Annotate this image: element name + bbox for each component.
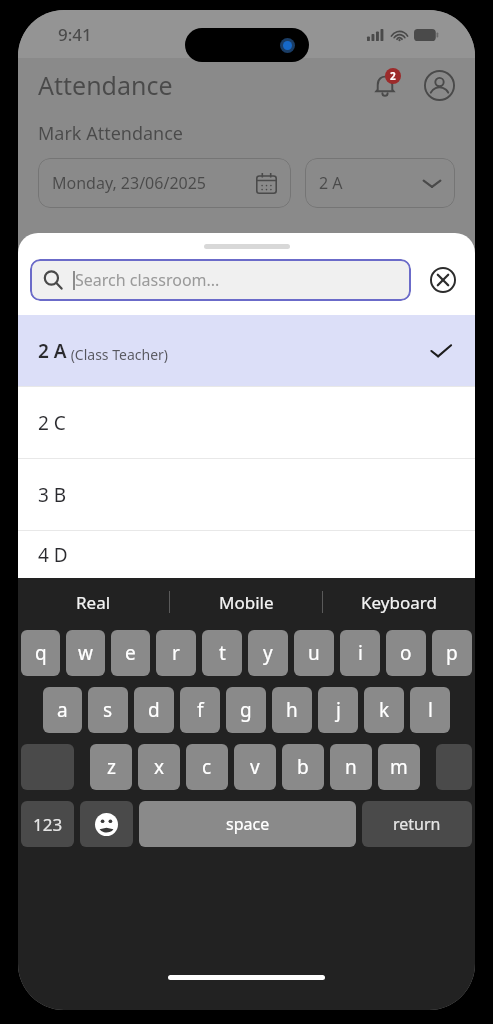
staticText: m bbox=[390, 754, 408, 780]
staticText: c bbox=[202, 754, 212, 780]
staticText: a bbox=[57, 697, 68, 723]
button[interactable]: m bbox=[378, 744, 420, 790]
button[interactable]: Notifications bbox=[365, 65, 405, 105]
button[interactable]: u bbox=[294, 630, 334, 676]
button[interactable]: 2 A bbox=[18, 315, 475, 386]
staticText: q bbox=[35, 640, 47, 666]
staticText: (Class Teacher) bbox=[67, 345, 169, 364]
button[interactable]: i bbox=[340, 630, 380, 676]
button[interactable]: e bbox=[111, 630, 150, 676]
staticText: y bbox=[263, 640, 273, 666]
staticText: n bbox=[345, 754, 357, 780]
button[interactable]: a bbox=[43, 687, 82, 733]
staticText: 4 D bbox=[38, 542, 68, 568]
staticText: u bbox=[308, 640, 320, 666]
staticText: 2 bbox=[390, 69, 396, 83]
staticText: e bbox=[125, 640, 136, 666]
button[interactable]: Real bbox=[18, 578, 169, 626]
staticText: i bbox=[358, 640, 363, 666]
staticText: Search classroom... bbox=[75, 269, 220, 291]
staticText: x bbox=[154, 754, 165, 780]
button[interactable]: s bbox=[88, 687, 128, 733]
staticText: Monday, 23/06/2025 bbox=[52, 172, 206, 194]
button[interactable]: t bbox=[202, 630, 242, 676]
staticText: k bbox=[379, 697, 390, 723]
staticText: Mark Attendance bbox=[38, 121, 184, 146]
staticText: 2 A bbox=[319, 172, 343, 194]
button[interactable]: q bbox=[21, 630, 60, 676]
button[interactable]: b bbox=[282, 744, 324, 790]
button[interactable]: n bbox=[330, 744, 372, 790]
staticText: z bbox=[107, 754, 116, 780]
staticText: space bbox=[226, 813, 270, 835]
staticText: Real bbox=[76, 591, 111, 614]
button[interactable]: f bbox=[180, 687, 220, 733]
button[interactable]: Close bbox=[423, 260, 463, 300]
staticText: s bbox=[103, 697, 113, 723]
staticText: b bbox=[297, 754, 309, 780]
staticText: 9:41 bbox=[58, 23, 92, 46]
button[interactable]: r bbox=[156, 630, 196, 676]
staticText: g bbox=[240, 697, 252, 723]
button[interactable]: x bbox=[138, 744, 180, 790]
button[interactable]: y bbox=[248, 630, 288, 676]
button[interactable]: 3 B bbox=[18, 459, 475, 530]
button[interactable]: space bbox=[139, 801, 356, 847]
button[interactable]: l bbox=[410, 687, 450, 733]
staticText: 3 B bbox=[38, 482, 67, 508]
staticText: Mobile bbox=[219, 591, 274, 614]
button[interactable]: Shift bbox=[21, 744, 74, 790]
button[interactable]: d bbox=[134, 687, 174, 733]
staticText: return bbox=[393, 813, 441, 835]
staticText: 123 bbox=[33, 813, 63, 836]
staticText: h bbox=[286, 697, 298, 723]
staticText: l bbox=[428, 697, 433, 723]
staticText: j bbox=[336, 697, 341, 723]
button[interactable]: 2 A bbox=[305, 158, 455, 208]
staticText: 2 C bbox=[38, 410, 66, 436]
button[interactable]: z bbox=[90, 744, 132, 790]
button[interactable]: 123 bbox=[21, 801, 74, 847]
button[interactable]: h bbox=[272, 687, 312, 733]
staticText: r bbox=[172, 640, 180, 666]
button[interactable]: o bbox=[386, 630, 426, 676]
staticText: f bbox=[197, 697, 204, 723]
button[interactable]: return bbox=[362, 801, 472, 847]
staticText: Keyboard bbox=[361, 591, 437, 614]
button[interactable]: Monday, 23/06/2025 bbox=[38, 158, 291, 208]
button[interactable]: Delete bbox=[436, 744, 472, 790]
staticText: Attendance bbox=[38, 68, 173, 102]
staticText: d bbox=[148, 697, 160, 723]
staticText: o bbox=[400, 640, 412, 666]
button[interactable]: k bbox=[364, 687, 404, 733]
staticText: w bbox=[78, 640, 93, 666]
button[interactable]: w bbox=[66, 630, 105, 676]
staticText: v bbox=[250, 754, 260, 780]
button[interactable]: 4 D bbox=[18, 531, 475, 578]
button[interactable]: c bbox=[186, 744, 228, 790]
button[interactable]: p bbox=[432, 630, 472, 676]
button[interactable]: j bbox=[318, 687, 358, 733]
button[interactable]: Mobile bbox=[170, 578, 322, 626]
button[interactable]: Emoji bbox=[80, 801, 133, 847]
button[interactable]: g bbox=[226, 687, 266, 733]
button[interactable]: Profile bbox=[419, 65, 459, 105]
button[interactable]: Search classroom... bbox=[30, 259, 411, 301]
button[interactable]: Keyboard bbox=[323, 578, 475, 626]
staticText: p bbox=[446, 640, 458, 666]
button[interactable]: 2 C bbox=[18, 387, 475, 458]
staticText: t bbox=[219, 640, 226, 666]
button[interactable]: v bbox=[234, 744, 276, 790]
staticText: 2 A bbox=[38, 338, 67, 364]
